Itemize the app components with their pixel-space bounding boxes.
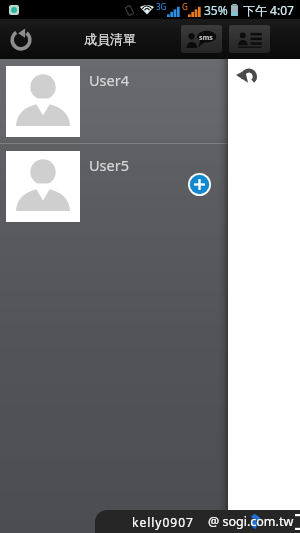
staticText: User5 bbox=[89, 155, 130, 175]
button[interactable]: Refresh bbox=[4, 22, 38, 56]
staticText: User4 bbox=[89, 70, 130, 90]
button[interactable]: User4 bbox=[0, 59, 228, 143]
staticText: 成員清單 bbox=[84, 31, 136, 47]
staticText: kelly0907 bbox=[132, 514, 194, 530]
button[interactable]: Send SMS bbox=[181, 25, 222, 53]
staticText: 35% bbox=[204, 2, 228, 18]
staticText: 3G bbox=[156, 1, 167, 12]
button[interactable]: User5 bbox=[0, 144, 228, 228]
button[interactable]: Add member bbox=[188, 173, 211, 196]
staticText: sms bbox=[199, 33, 213, 43]
staticText: 下午 4:07 bbox=[243, 2, 294, 18]
button[interactable]: Contacts bbox=[229, 25, 270, 53]
button[interactable]: Undo bbox=[235, 67, 256, 85]
staticText: G bbox=[182, 1, 188, 12]
staticText: @ sogi.com.tw bbox=[208, 513, 294, 530]
